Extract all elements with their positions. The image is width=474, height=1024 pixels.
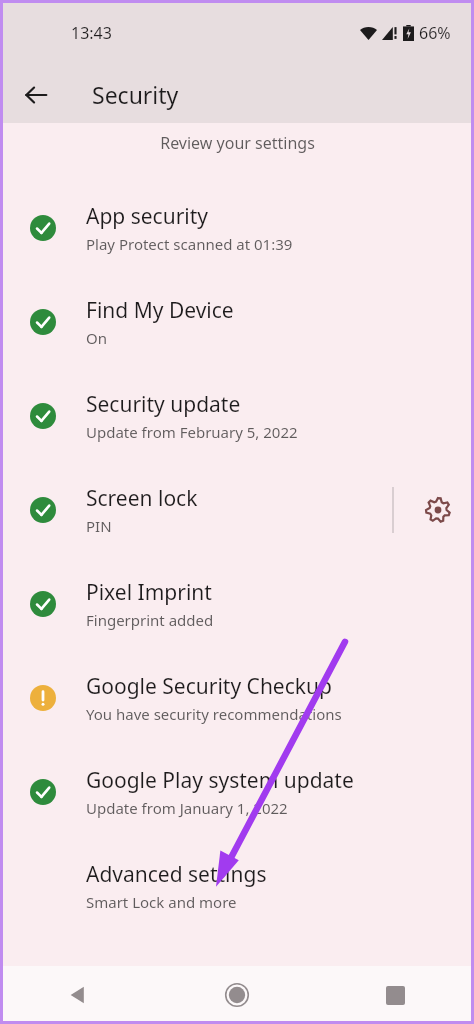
staticText: On	[86, 328, 107, 348]
staticText: Pixel Imprint	[86, 578, 212, 607]
staticText: 66%	[419, 22, 451, 44]
button[interactable]: Screen lock settings	[402, 474, 474, 546]
button[interactable]: Back	[13, 72, 59, 118]
button[interactable]: Recent apps	[316, 966, 474, 1024]
button[interactable]: Pixel Imprint	[0, 557, 474, 651]
staticText: Advanced settings	[86, 860, 267, 889]
staticText: Google Security Checkup	[86, 672, 332, 701]
button[interactable]: Back	[0, 966, 158, 1024]
staticText: Review your settings	[160, 132, 315, 154]
staticText: Update from February 5, 2022	[86, 422, 298, 442]
button[interactable]: Security update	[0, 369, 474, 463]
staticText: Update from January 1, 2022	[86, 798, 288, 818]
staticText: Security update	[86, 390, 241, 419]
staticText: Screen lock	[86, 484, 198, 513]
staticText: PIN	[86, 516, 112, 536]
staticText: Security	[92, 79, 179, 110]
button[interactable]: Home	[158, 966, 316, 1024]
button[interactable]: Google Security Checkup	[0, 651, 474, 745]
staticText: Play Protect scanned at 01:39	[86, 234, 293, 254]
button[interactable]: Find My Device	[0, 275, 474, 369]
staticText: 13:43	[71, 22, 112, 44]
staticText: Fingerprint added	[86, 610, 214, 630]
button[interactable]: Google Play system update	[0, 745, 474, 839]
button[interactable]: Screen lock	[0, 463, 474, 557]
button[interactable]: Advanced settings	[0, 839, 474, 933]
staticText: Smart Lock and more	[86, 892, 237, 912]
staticText: App security	[86, 202, 209, 231]
staticText: You have security recommendations	[86, 704, 342, 724]
staticText: Google Play system update	[86, 766, 354, 795]
staticText: Find My Device	[86, 296, 234, 325]
button[interactable]: App security	[0, 181, 474, 275]
